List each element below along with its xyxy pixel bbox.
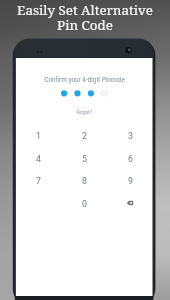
staticText: Confirm your 4-digit Pincode xyxy=(44,76,125,84)
button[interactable]: 4 xyxy=(18,148,58,170)
staticText: 0 xyxy=(82,199,87,209)
staticText: 7 xyxy=(36,176,41,186)
staticText: 4 xyxy=(36,154,41,164)
button[interactable]: 0 xyxy=(64,193,104,215)
button[interactable]: Forgot? xyxy=(66,107,102,118)
button[interactable]: 7 xyxy=(18,170,58,192)
staticText: Pin Code xyxy=(57,16,113,34)
staticText: 6 xyxy=(128,154,133,164)
staticText: 5 xyxy=(82,154,87,164)
button[interactable]: 5 xyxy=(64,148,104,170)
staticText: 8 xyxy=(82,176,87,186)
button[interactable]: 3 xyxy=(110,125,150,147)
staticText: Forgot? xyxy=(76,110,92,115)
button[interactable]: 8 xyxy=(64,170,104,192)
button[interactable]: 1 xyxy=(18,125,58,147)
button[interactable]: 2 xyxy=(64,125,104,147)
button[interactable]: 9 xyxy=(110,170,150,192)
button[interactable]: 6 xyxy=(110,148,150,170)
staticText: 3 xyxy=(128,131,133,141)
button[interactable]: Backspace xyxy=(110,192,150,214)
staticText: 1 xyxy=(36,131,41,141)
staticText: Easily Set Alternative xyxy=(17,1,153,19)
staticText: 9 xyxy=(128,176,133,186)
staticText: 2 xyxy=(82,131,87,141)
